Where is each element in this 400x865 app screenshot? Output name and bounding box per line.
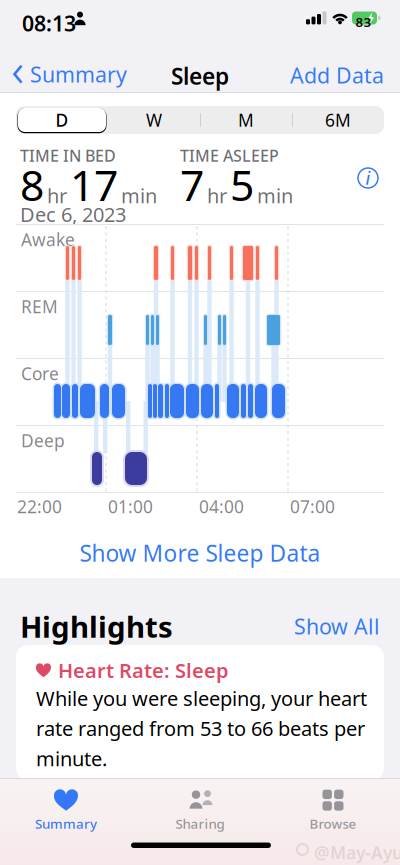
button[interactable]: Show More Sleep Data	[0, 538, 400, 568]
staticText: Sharing	[175, 815, 224, 832]
button[interactable]: M	[200, 106, 292, 134]
staticText: M	[238, 108, 254, 131]
staticText: Summary	[35, 815, 97, 832]
staticText: 7	[180, 156, 204, 213]
staticText: Browse	[309, 815, 356, 832]
staticText: min	[257, 182, 293, 209]
staticText: Highlights	[20, 607, 173, 646]
button[interactable]: 6M	[292, 106, 384, 134]
staticText: REM	[21, 295, 58, 318]
staticText: Show More Sleep Data	[79, 538, 320, 568]
staticText: i	[365, 166, 370, 189]
staticText: Sleep	[171, 61, 229, 91]
button[interactable]: Heart Rate: Sleep	[16, 645, 384, 780]
staticText: 17	[70, 156, 118, 213]
staticText: hr	[207, 182, 227, 209]
staticText: 83	[355, 13, 371, 31]
staticText: 01:00	[108, 495, 153, 518]
staticText: Dec 6, 2023	[20, 201, 126, 228]
staticText: Summary	[30, 60, 127, 88]
staticText: 6M	[325, 108, 351, 131]
staticText: TIME IN BED	[20, 145, 116, 166]
button[interactable]: Browse	[278, 788, 388, 834]
staticText: 04:00	[199, 495, 244, 518]
staticText: Awake	[21, 228, 75, 251]
staticText: Show All	[294, 612, 380, 640]
button[interactable]: D	[16, 106, 108, 134]
button[interactable]: Back to Summary	[9, 60, 131, 88]
staticText: hr	[47, 182, 67, 209]
staticText: While you were sleeping, your heart rate…	[36, 685, 367, 772]
staticText: Add Data	[290, 61, 384, 89]
button[interactable]: W	[108, 106, 200, 134]
staticText: 08:13	[22, 9, 76, 37]
staticText: TIME ASLEEP	[180, 145, 279, 166]
button[interactable]: Summary	[11, 788, 121, 834]
staticText: Core	[21, 362, 59, 385]
button[interactable]: Add Data	[290, 61, 384, 89]
staticText: 5	[230, 156, 254, 213]
staticText: min	[121, 182, 157, 209]
staticText: Deep	[21, 429, 65, 452]
staticText: W	[146, 108, 162, 131]
staticText: D	[55, 108, 68, 131]
staticText: 8	[20, 156, 44, 213]
staticText: 07:00	[290, 495, 335, 518]
staticText: Heart Rate: Sleep	[58, 657, 229, 684]
staticText: 22:00	[17, 495, 62, 518]
button[interactable]: Show All	[294, 612, 380, 640]
button[interactable]: Sharing	[145, 788, 255, 834]
button[interactable]: About Sleep	[356, 166, 380, 190]
staticText: @May-Ayu	[314, 841, 400, 864]
